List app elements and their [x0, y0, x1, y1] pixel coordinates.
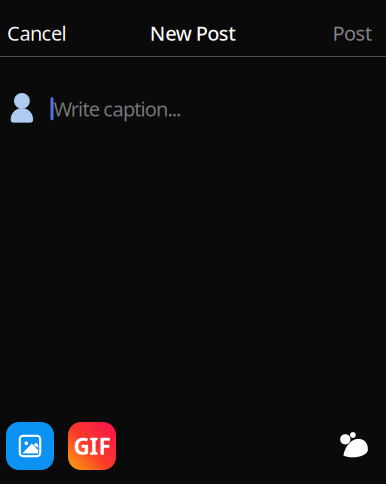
- button[interactable]: Post: [312, 11, 386, 55]
- button[interactable]: Add photo: [6, 422, 54, 470]
- button[interactable]: Add GIF: [68, 422, 116, 470]
- staticText: Post: [332, 20, 372, 46]
- button[interactable]: Cancel: [0, 11, 79, 55]
- button[interactable]: Add sticker: [333, 424, 377, 468]
- staticText: Write caption...: [53, 95, 181, 122]
- button[interactable]: Write caption: [0, 57, 386, 167]
- staticText: New Post: [150, 20, 236, 46]
- staticText: Cancel: [7, 20, 66, 46]
- staticText: GIF: [73, 431, 110, 461]
